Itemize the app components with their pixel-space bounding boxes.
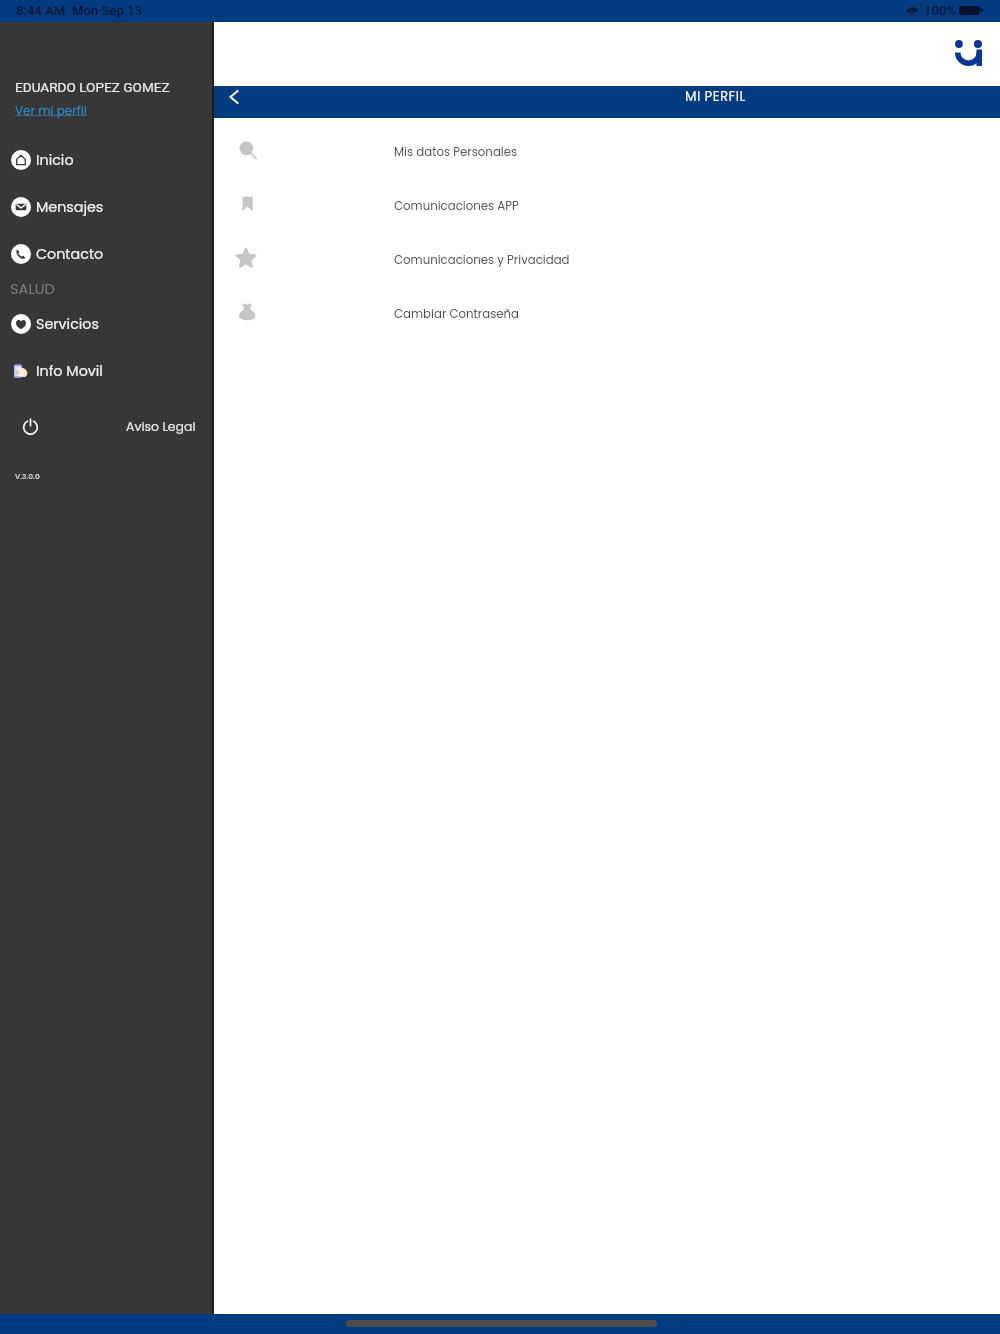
staticText: V.3.0.0 [15,471,40,481]
staticText: Ver mi perfil [15,102,87,119]
staticText: 100% [924,3,956,18]
button[interactable]: Servicios [0,301,214,347]
staticText: Comunicaciones APP [394,198,519,214]
staticText: 8:44 AM [16,3,66,18]
staticText: Comunicaciones y Privacidad [394,252,570,268]
button[interactable]: Ver mi perfil [15,102,87,119]
button[interactable]: Back [215,86,255,118]
staticText: EDUARDO LOPEZ GOMEZ [15,79,170,95]
button[interactable]: Comunicaciones y Privacidad [0,231,1000,285]
button[interactable]: Mensajes [0,184,214,230]
staticText: Contacto [36,244,104,264]
staticText: Mensajes [36,197,104,217]
staticText: Servicios [36,314,99,334]
staticText: MI PERFIL [685,87,746,106]
button[interactable]: Mis datos Personales [0,123,1000,177]
staticText: Cambiar Contraseña [394,306,520,322]
staticText: SALUD [10,279,55,299]
button[interactable]: Info Movil [0,348,214,394]
staticText: Aviso Legal [126,418,196,435]
staticText: Mis datos Personales [394,144,518,160]
button[interactable]: Contacto [0,231,214,277]
staticText: Mon Sep 13 [72,3,142,18]
staticText: Inicio [36,150,74,170]
button[interactable]: Inicio [0,137,214,183]
button[interactable]: Cambiar Contraseña [0,285,1000,339]
button[interactable]: Logo [955,39,982,66]
button[interactable]: Cerrar sesion [17,413,43,439]
button[interactable]: Comunicaciones APP [0,177,1000,231]
staticText: Info Movil [36,361,103,381]
button[interactable]: Aviso Legal [126,418,196,435]
